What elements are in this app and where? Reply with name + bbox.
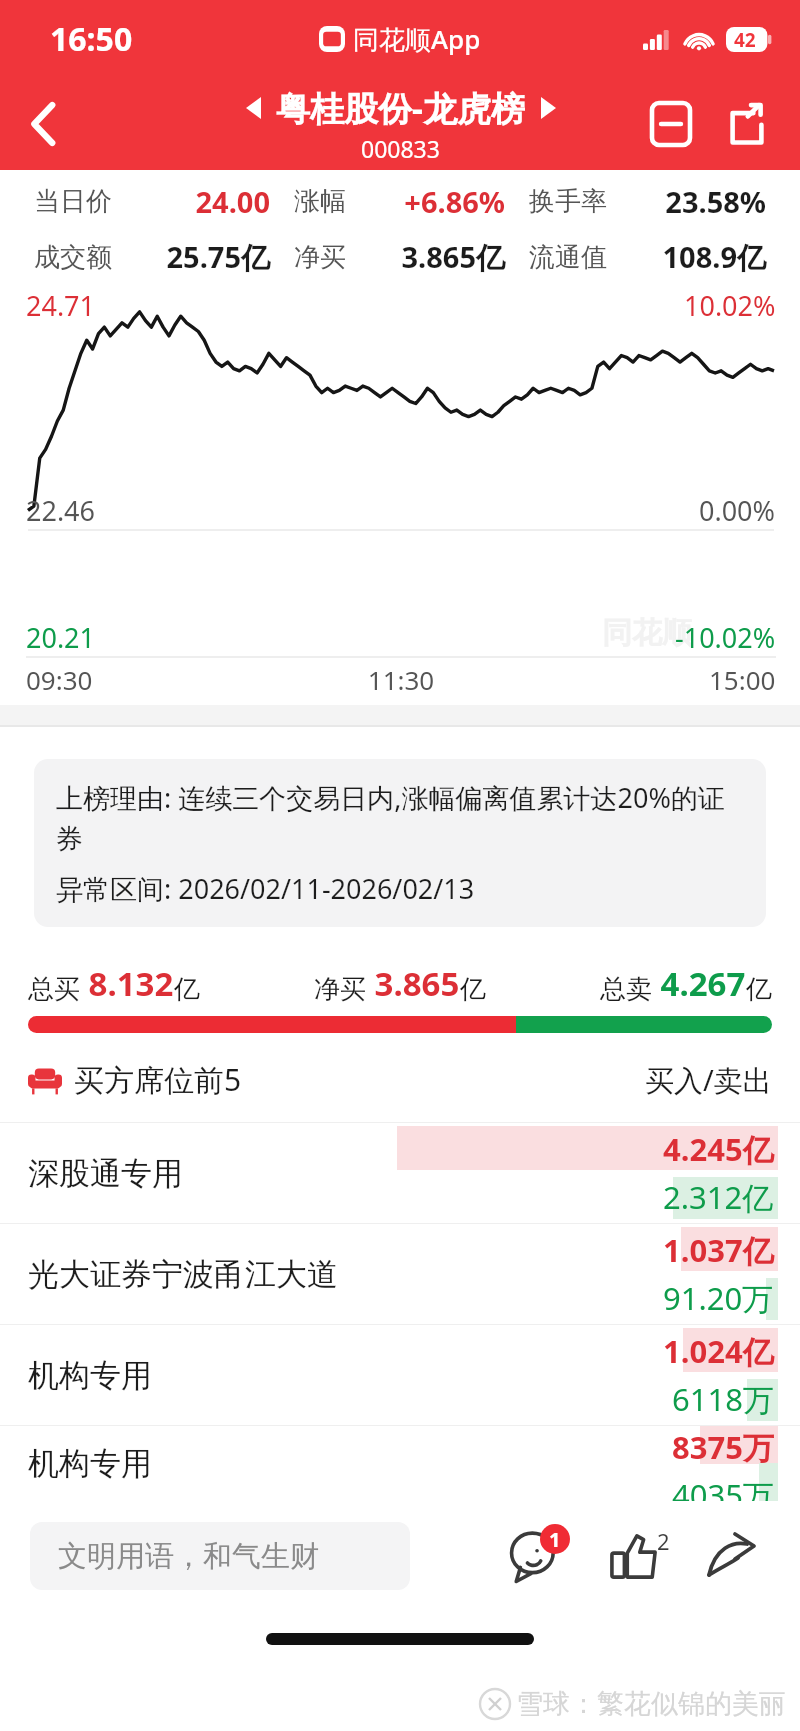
staticText: 4.267 — [652, 961, 746, 1006]
staticText: 买入/卖出 — [645, 1060, 772, 1100]
staticText: 总卖 — [600, 973, 652, 1006]
staticText: 91.20万 — [663, 1277, 774, 1319]
staticText: 换手率 — [529, 185, 607, 218]
staticText: 光大证券宁波甬江大道 — [28, 1255, 338, 1294]
staticText: 亿 — [174, 973, 200, 1006]
staticText: 上榜理由: 连续三个交易日内,涨幅偏离值累计达20%的证券 — [56, 779, 744, 856]
staticText: +6.86% — [346, 182, 505, 221]
staticText: 3.865 — [366, 961, 460, 1006]
staticText: 20.21 — [26, 619, 96, 656]
staticText: 净买 — [294, 241, 346, 274]
button[interactable]: Minimize — [640, 93, 702, 155]
staticText: 15:00 — [709, 662, 776, 697]
staticText: 粤桂股份-龙虎榜 — [276, 85, 525, 131]
staticText: 16:50 — [50, 17, 133, 61]
staticText: 亿 — [460, 973, 486, 1006]
staticText: 8375万 — [672, 1426, 774, 1468]
staticText: 异常区间: 2026/02/11-2026/02/13 — [56, 870, 475, 907]
button[interactable]: 机构专用 — [0, 1426, 800, 1501]
staticText: 25.75亿 — [112, 237, 270, 277]
staticText: 2.312亿 — [663, 1176, 774, 1218]
button[interactable]: 深股通专用 — [0, 1123, 800, 1224]
staticText: 1.037亿 — [663, 1229, 774, 1271]
button[interactable]: Previous stock — [236, 91, 270, 125]
button[interactable]: 机构专用 — [0, 1325, 800, 1426]
staticText: 流通值 — [529, 241, 607, 274]
staticText: 同花顺 — [602, 614, 692, 652]
button[interactable]: 文明用语，和气生财 — [30, 1522, 410, 1590]
staticText: 涨幅 — [294, 185, 346, 218]
button[interactable]: Share — [694, 1518, 770, 1594]
button[interactable]: 上榜理由: 连续三个交易日内,涨幅偏离值累计达20%的证券 — [34, 759, 766, 927]
staticText: 42 — [734, 27, 756, 52]
staticText: 2 — [657, 1526, 670, 1556]
staticText: 机构专用 — [28, 1356, 152, 1395]
staticText: 24.00 — [112, 182, 270, 221]
staticText: 11:30 — [93, 662, 709, 697]
staticText: 当日价 — [34, 185, 112, 218]
staticText: 1 — [549, 1526, 561, 1553]
staticText: 1.024亿 — [663, 1330, 774, 1372]
staticText: 雪球：繁花似锦的美丽 — [516, 1687, 786, 1721]
staticText: 净买 — [314, 973, 366, 1006]
staticText: 8.132 — [80, 961, 174, 1006]
staticText: 买方席位前5 — [74, 1059, 242, 1100]
staticText: 000833 — [361, 133, 440, 164]
button[interactable]: Comments — [498, 1518, 574, 1594]
button[interactable]: Next stock — [531, 91, 565, 125]
staticText: 4035万 — [672, 1474, 774, 1501]
button[interactable]: 光大证券宁波甬江大道 — [0, 1224, 800, 1325]
staticText: 深股通专用 — [28, 1154, 183, 1193]
button[interactable]: Share — [716, 93, 778, 155]
staticText: 亿 — [746, 973, 772, 1006]
staticText: 4.245亿 — [663, 1128, 774, 1170]
staticText: 09:30 — [26, 662, 93, 697]
staticText: 机构专用 — [28, 1444, 152, 1483]
staticText: 文明用语，和气生财 — [58, 1538, 319, 1575]
staticText: 6118万 — [672, 1378, 774, 1420]
staticText: 22.46 — [26, 492, 96, 529]
staticText: 3.865亿 — [346, 237, 505, 277]
button[interactable]: Back — [0, 81, 86, 167]
staticText: 总买 — [28, 973, 80, 1006]
staticText: 24.71 — [26, 287, 96, 324]
staticText: 10.02% — [684, 287, 776, 324]
button[interactable]: Like — [596, 1518, 672, 1594]
staticText: 108.9亿 — [607, 237, 766, 277]
staticText: 0.00% — [699, 492, 776, 529]
staticText: -10.02% — [675, 619, 776, 656]
staticText: 23.58% — [607, 182, 766, 221]
staticText: 同花顺App — [353, 21, 481, 57]
staticText: 成交额 — [34, 241, 112, 274]
